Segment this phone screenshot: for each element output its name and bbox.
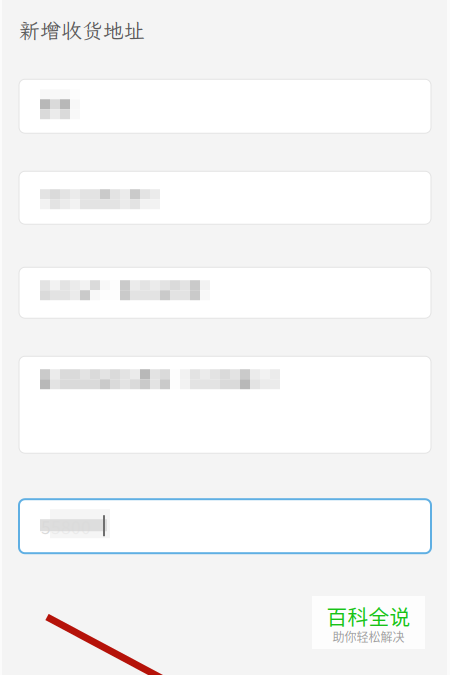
button[interactable]: 55800: [19, 499, 431, 553]
button[interactable]: [19, 356, 431, 453]
staticText: 55800: [41, 514, 91, 539]
staticText: 助你轻松解决: [332, 628, 404, 645]
button[interactable]: [19, 79, 431, 133]
staticText: 新增收货地址: [19, 17, 145, 44]
button[interactable]: [19, 171, 431, 224]
staticText: 百科全说: [326, 601, 410, 631]
button[interactable]: [19, 267, 431, 318]
